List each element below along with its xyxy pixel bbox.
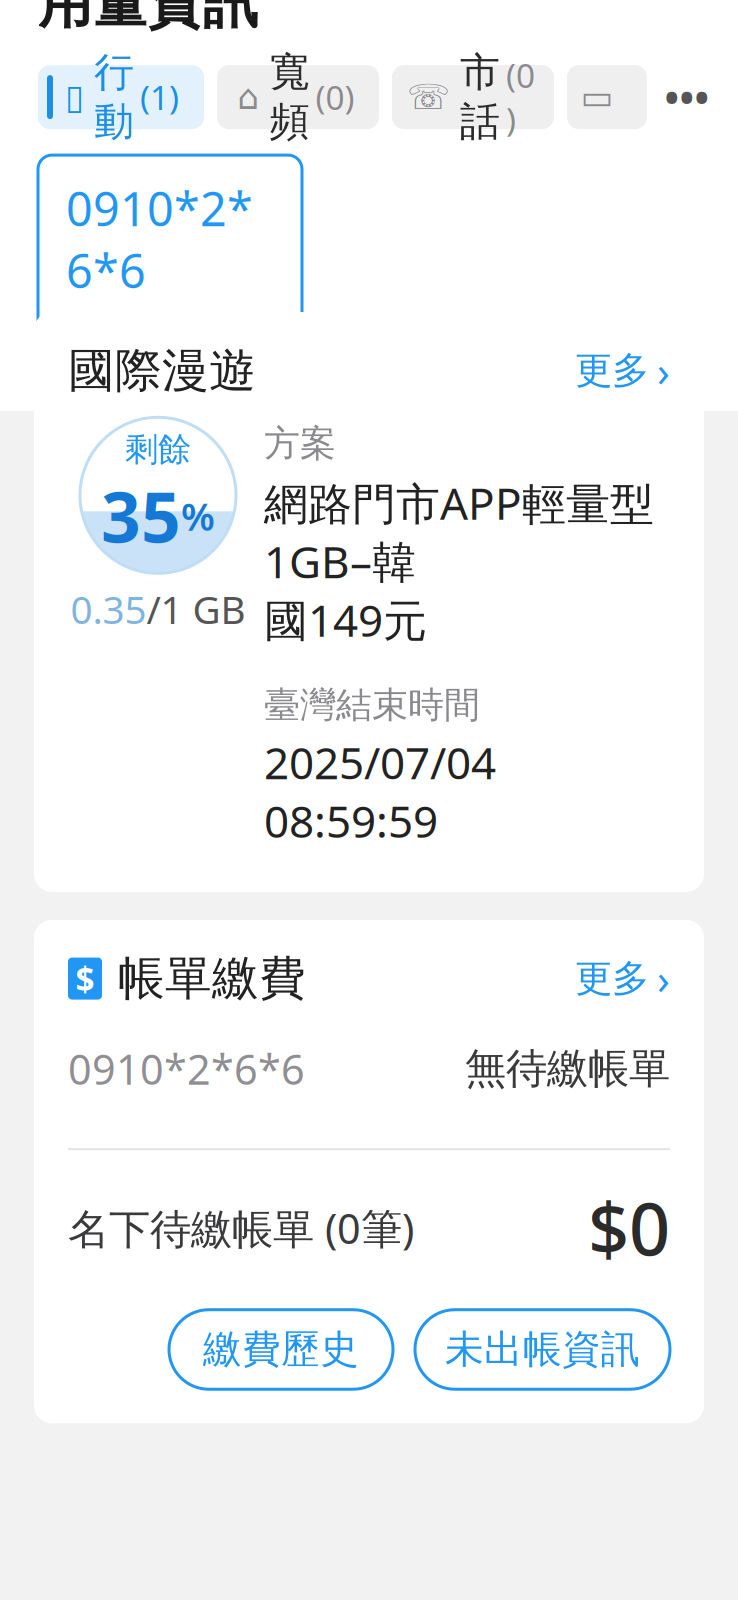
button[interactable]: 更多 [575, 951, 670, 1006]
staticText: % [181, 490, 215, 541]
button[interactable]: 繳費歷史 [169, 1310, 393, 1389]
staticText: ▭ [580, 77, 613, 117]
staticText: 寬頻 [269, 48, 309, 146]
staticText: 無待繳帳單 [465, 1043, 670, 1094]
staticText: 名下待繳帳單 (0筆) [68, 1200, 414, 1255]
staticText: (0) [315, 75, 354, 119]
staticText: 繳費歷史 [203, 1326, 359, 1373]
staticText: 更多 [575, 348, 649, 394]
staticText: 國149元 [264, 590, 427, 649]
staticText: 0910*2*6*6 [66, 177, 253, 301]
staticText: ☏ [407, 77, 450, 117]
staticText: 更多 [575, 956, 649, 1001]
button[interactable]: ☏ [392, 65, 554, 129]
staticText: 行動 [94, 48, 134, 146]
staticText: 2025/07/04 08:59:59 [264, 733, 496, 850]
staticText: 未出帳資訊 [445, 1326, 640, 1373]
staticText: 市話 [460, 48, 500, 146]
button[interactable]: 未出帳資訊 [415, 1310, 670, 1389]
staticText: $0 [588, 1180, 670, 1276]
staticText: 35 [101, 470, 181, 562]
staticText: › [657, 951, 670, 1006]
button[interactable]: ⌂ [217, 65, 379, 129]
staticText: (1) [140, 75, 179, 119]
staticText: 國際漫遊 [68, 342, 256, 399]
staticText: 0.35 [70, 583, 146, 635]
staticText: $ [75, 956, 94, 1001]
staticText: 網路門市APP輕量型1GB–韓 [264, 473, 654, 590]
staticText: 4G 799型 [66, 305, 221, 353]
staticText: 方案 [264, 421, 336, 465]
staticText: › [657, 343, 670, 398]
staticText: ⌂ [237, 77, 259, 117]
button[interactable]: 0910*2*6*6 [38, 155, 302, 375]
button[interactable]: 更多 [575, 343, 670, 398]
staticText: 剩餘 [125, 429, 191, 470]
button[interactable]: ▭ [567, 65, 647, 129]
button[interactable]: More categories [660, 65, 714, 129]
staticText: 帳單繳費 [118, 950, 306, 1007]
staticText: (0) [506, 53, 535, 141]
button[interactable]: ▯ [38, 65, 204, 129]
staticText: 臺灣結束時間 [264, 683, 480, 727]
staticText: /1 GB [146, 583, 245, 635]
staticText: ••• [664, 71, 709, 123]
staticText: ▯ [65, 77, 84, 117]
staticText: 0910*2*6*6 [68, 1041, 305, 1096]
staticText: 用量資訊 [38, 0, 258, 37]
